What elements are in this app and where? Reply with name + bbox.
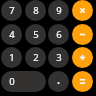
button[interactable]: Equals — [72, 71, 93, 92]
staticText: 1 — [9, 51, 15, 64]
button[interactable]: 7 — [1, 0, 22, 21]
staticText: 6 — [56, 28, 62, 41]
button[interactable]: Plus — [72, 47, 93, 68]
staticText: 0 — [9, 75, 15, 88]
button[interactable]: Decimal point — [48, 71, 69, 92]
button[interactable]: 6 — [48, 24, 69, 45]
staticText: 2 — [33, 51, 39, 64]
staticText: 8 — [33, 4, 39, 17]
button[interactable]: Multiply — [72, 0, 93, 21]
button[interactable]: 0 — [1, 71, 46, 92]
button[interactable]: 8 — [25, 0, 46, 21]
button[interactable]: 9 — [48, 0, 69, 21]
button[interactable]: 4 — [1, 24, 22, 45]
button[interactable]: Minus — [72, 24, 93, 45]
button[interactable]: 2 — [25, 47, 46, 68]
staticText: 3 — [56, 51, 62, 64]
button[interactable]: 1 — [1, 47, 22, 68]
button[interactable]: 3 — [48, 47, 69, 68]
staticText: 5 — [33, 28, 39, 41]
button[interactable]: 5 — [25, 24, 46, 45]
staticText: 4 — [9, 28, 15, 41]
staticText: 9 — [56, 4, 62, 17]
staticText: 7 — [9, 4, 15, 17]
